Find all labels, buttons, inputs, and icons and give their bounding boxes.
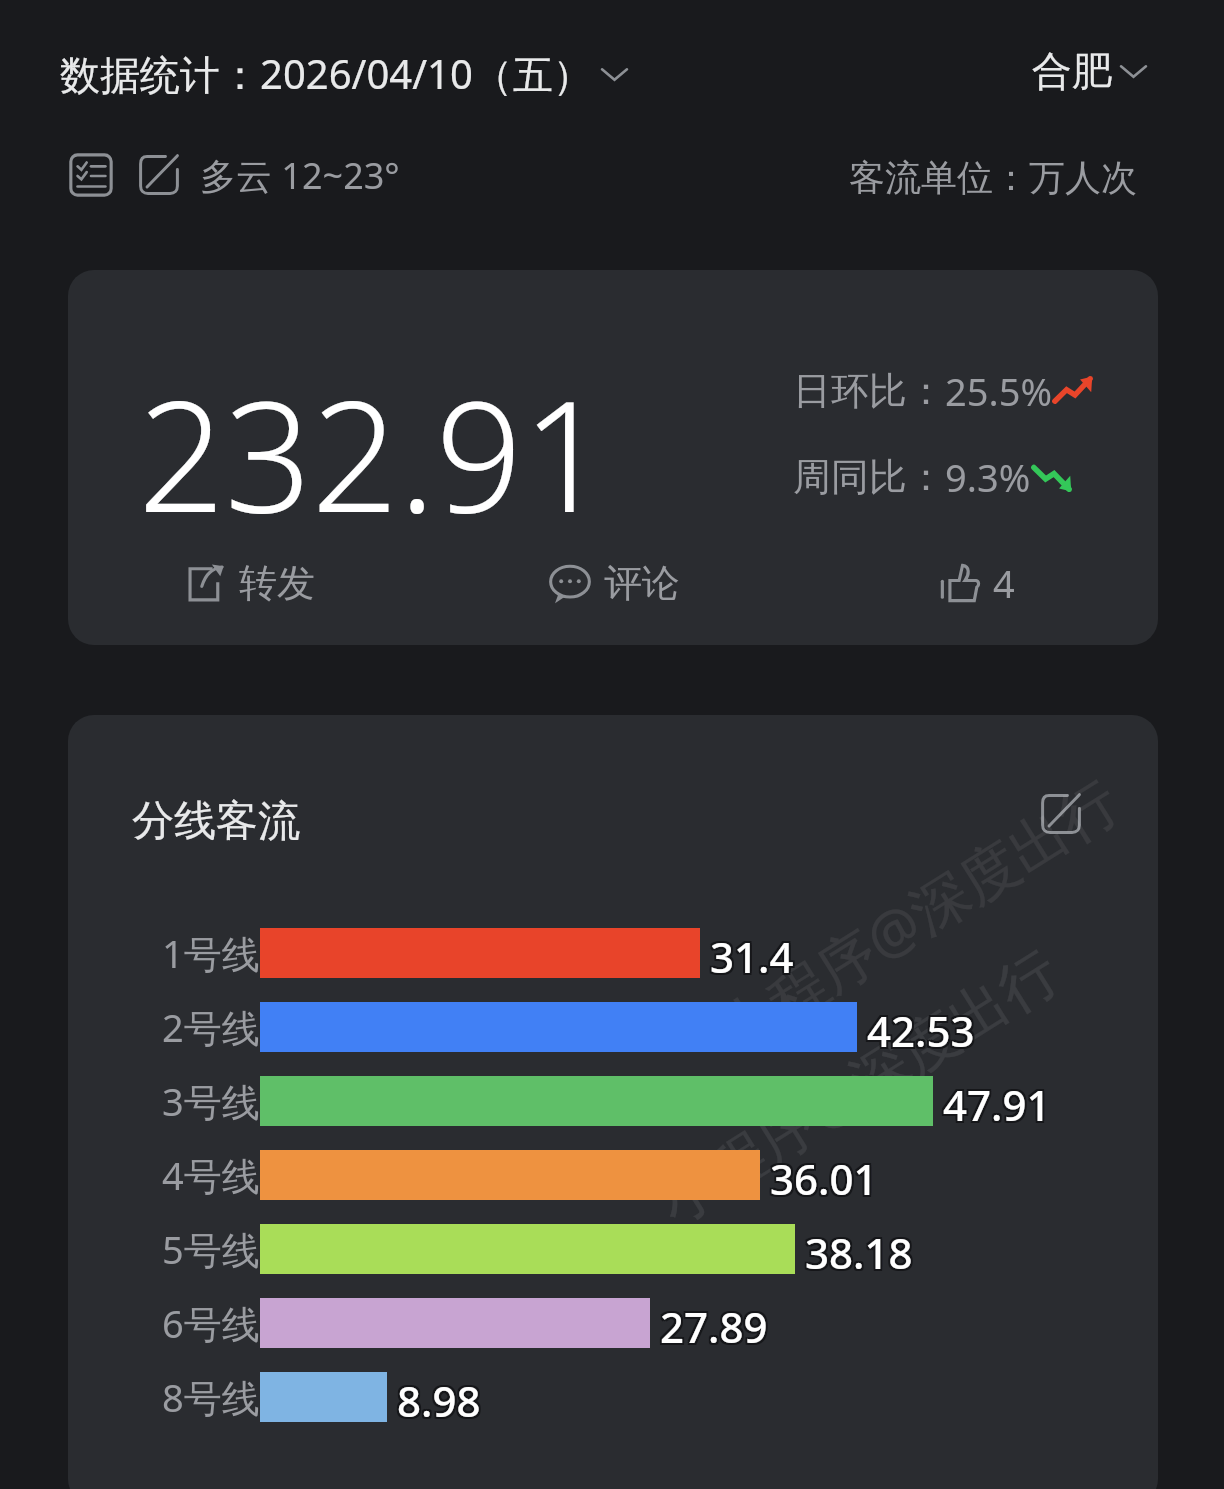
staticText: 客流单位：万人次 — [849, 155, 1137, 200]
staticText: 27.89 — [660, 1296, 768, 1346]
staticText: 38.18 — [807, 1222, 915, 1272]
staticText: 27.89 — [660, 1298, 768, 1348]
staticText: 数据统计：2026/04/10（五） — [60, 46, 593, 101]
button[interactable]: 编辑 — [1030, 783, 1092, 845]
staticText: 27.89 — [662, 1300, 770, 1350]
staticText: 47.91 — [945, 1076, 1053, 1126]
button[interactable]: 47.91 — [260, 1076, 1051, 1126]
staticText: 47.91 — [941, 1076, 1049, 1126]
staticText: 42.53 — [867, 1000, 975, 1050]
staticText: 38.18 — [807, 1224, 915, 1274]
staticText: 38.18 — [807, 1226, 915, 1276]
staticText: 42.53 — [867, 1004, 975, 1054]
staticText: 8.98 — [399, 1374, 483, 1424]
staticText: 8.98 — [397, 1372, 481, 1422]
button[interactable]: 42.53 — [260, 1002, 975, 1052]
staticText: 6号线 — [162, 1297, 260, 1349]
staticText: 36.01 — [772, 1152, 880, 1202]
button[interactable]: 36.01 — [260, 1150, 878, 1200]
button[interactable]: 编辑 — [132, 148, 186, 202]
staticText: 42.53 — [865, 1002, 973, 1052]
staticText: 31.4 — [712, 926, 796, 976]
staticText: 38.18 — [803, 1224, 911, 1274]
staticText: 转发 — [239, 559, 315, 607]
staticText: 8.98 — [395, 1372, 479, 1422]
staticText: 27.89 — [662, 1296, 770, 1346]
staticText: 8.98 — [397, 1374, 481, 1424]
staticText: 47.91 — [941, 1074, 1049, 1124]
staticText: 1号线 — [162, 927, 260, 979]
button[interactable]: 4 — [921, 545, 1033, 621]
staticText: 42.53 — [869, 1004, 977, 1054]
staticText: 47.91 — [943, 1074, 1051, 1124]
staticText: 周同比： — [793, 453, 945, 501]
staticText: 评论 — [604, 559, 680, 607]
staticText: 31.4 — [708, 928, 792, 978]
staticText: 5号线 — [162, 1223, 260, 1275]
button[interactable]: 38.18 — [260, 1224, 913, 1274]
button[interactable]: 清单 — [64, 148, 118, 202]
button[interactable]: 转发 — [167, 547, 333, 619]
staticText: 36.01 — [768, 1150, 876, 1200]
staticText: 8.98 — [397, 1370, 481, 1420]
staticText: 47.91 — [943, 1078, 1051, 1128]
staticText: 31.4 — [708, 926, 792, 976]
staticText: 232.91 — [138, 350, 610, 557]
staticText: 31.4 — [710, 926, 794, 976]
staticText: 42.53 — [865, 1000, 973, 1050]
staticText: 38.18 — [805, 1222, 913, 1272]
staticText: 4 — [993, 557, 1015, 609]
staticText: 31.4 — [710, 930, 794, 980]
staticText: 31.4 — [710, 928, 794, 978]
staticText: 4号线 — [162, 1149, 260, 1201]
staticText: 27.89 — [658, 1300, 766, 1350]
staticText: 38.18 — [805, 1224, 913, 1274]
staticText: 分线客流 — [132, 795, 300, 848]
staticText: 8.98 — [395, 1374, 479, 1424]
staticText: 多云 12~23° — [200, 151, 400, 200]
staticText: 8.98 — [399, 1370, 483, 1420]
button[interactable]: 评论 — [530, 547, 698, 619]
button[interactable]: 数据统计：2026/04/10（五） — [58, 42, 636, 105]
staticText: 27.89 — [658, 1298, 766, 1348]
staticText: 38.18 — [803, 1222, 911, 1272]
staticText: 47.91 — [945, 1078, 1053, 1128]
staticText: 42.53 — [869, 1002, 977, 1052]
staticText: 25.5% — [945, 365, 1052, 417]
button[interactable]: 合肥 — [1030, 42, 1155, 100]
staticText: 8.98 — [399, 1372, 483, 1422]
staticText: 38.18 — [803, 1226, 911, 1276]
staticText: 合肥 — [1032, 46, 1112, 96]
staticText: 27.89 — [658, 1296, 766, 1346]
staticText: 日环比： — [793, 367, 945, 415]
staticText: 8号线 — [162, 1371, 260, 1423]
staticText: 47.91 — [945, 1074, 1053, 1124]
staticText: 27.89 — [660, 1300, 768, 1350]
staticText: 小程序@深度出行 — [642, 929, 1073, 1240]
staticText: 31.4 — [712, 930, 796, 980]
button[interactable]: 8.98 — [260, 1372, 481, 1422]
staticText: 42.53 — [869, 1000, 977, 1050]
button[interactable]: 31.4 — [260, 928, 794, 978]
staticText: 47.91 — [941, 1078, 1049, 1128]
staticText: 36.01 — [770, 1148, 878, 1198]
staticText: 3号线 — [162, 1075, 260, 1127]
staticText: 47.91 — [943, 1076, 1051, 1126]
staticText: 27.89 — [662, 1298, 770, 1348]
staticText: 36.01 — [768, 1152, 876, 1202]
staticText: 36.01 — [772, 1150, 880, 1200]
staticText: 42.53 — [867, 1002, 975, 1052]
staticText: 2号线 — [162, 1001, 260, 1053]
staticText: 36.01 — [770, 1150, 878, 1200]
button[interactable]: 27.89 — [260, 1298, 768, 1348]
staticText: 31.4 — [712, 928, 796, 978]
staticText: 36.01 — [768, 1148, 876, 1198]
staticText: 小程序@深度出行 — [702, 759, 1133, 1070]
staticText: 8.98 — [395, 1370, 479, 1420]
staticText: 31.4 — [708, 930, 792, 980]
staticText: 36.01 — [772, 1148, 880, 1198]
staticText: 38.18 — [805, 1226, 913, 1276]
staticText: 9.3% — [945, 451, 1031, 503]
staticText: 42.53 — [865, 1004, 973, 1054]
staticText: 36.01 — [770, 1152, 878, 1202]
